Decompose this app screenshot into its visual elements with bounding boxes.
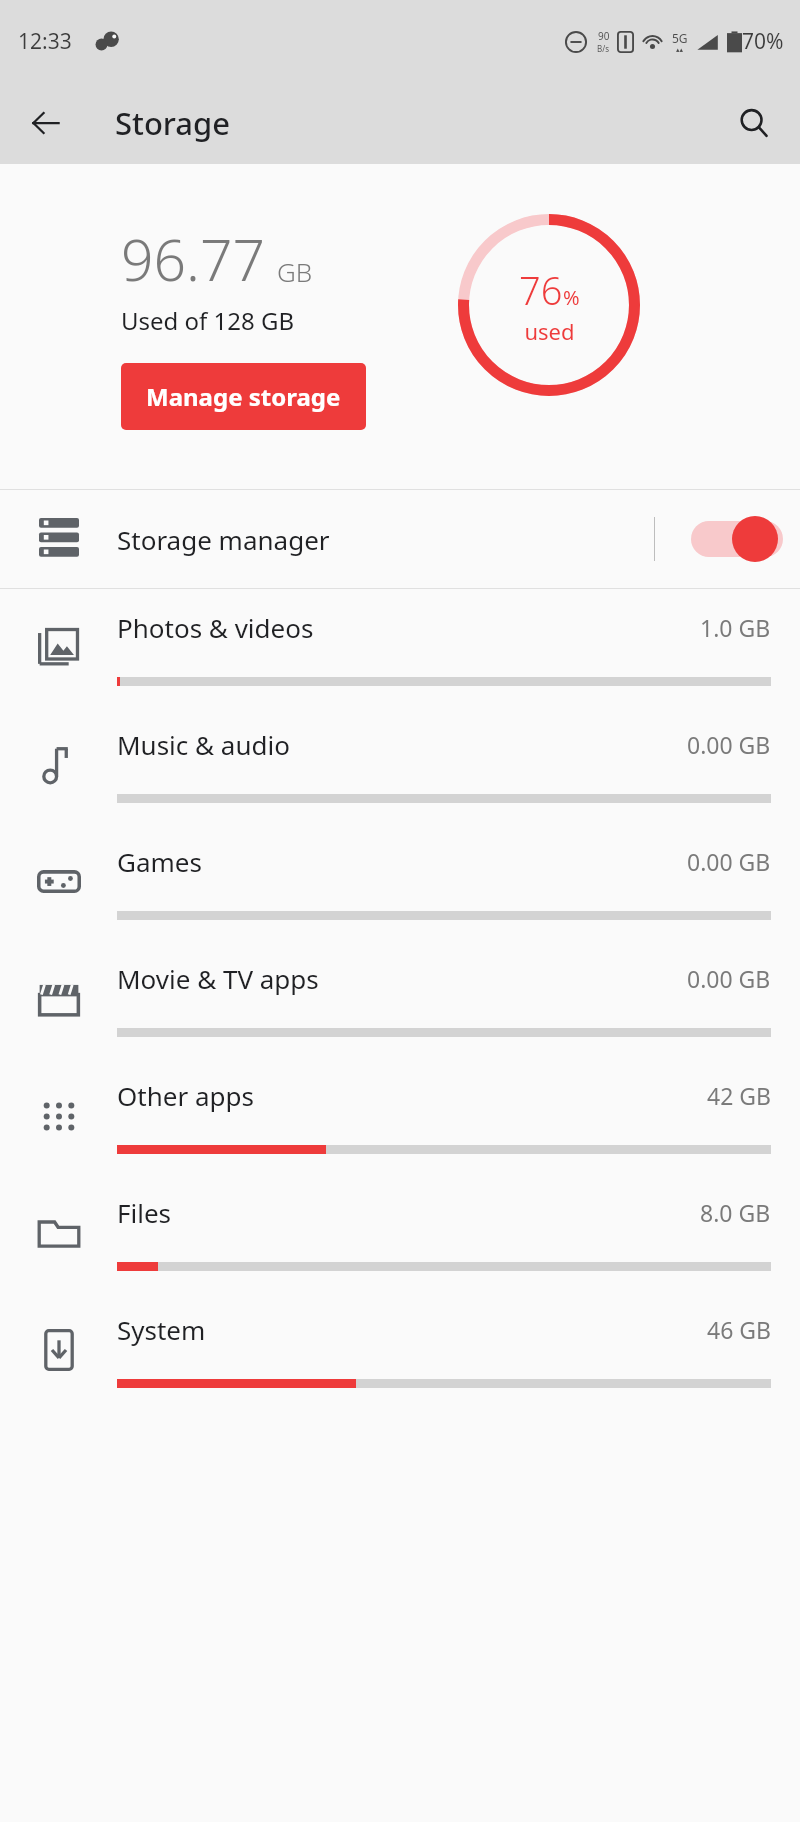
button[interactable]: Storage manager toggle — [655, 490, 800, 588]
staticText: 90 — [598, 29, 610, 43]
staticText: used — [524, 316, 575, 346]
staticText: ▴▴ — [676, 46, 684, 54]
staticText: Storage — [115, 102, 231, 144]
button[interactable]: Photos & videos — [0, 589, 800, 706]
staticText: Music & audio — [117, 727, 687, 762]
button[interactable]: Other apps — [0, 1057, 800, 1174]
staticText: 1.0 GB — [700, 612, 771, 643]
staticText: System — [117, 1312, 707, 1347]
staticText: Other apps — [117, 1078, 707, 1113]
staticText: % — [563, 284, 580, 311]
button[interactable]: Search — [728, 97, 780, 149]
button[interactable]: Manage storage — [121, 363, 366, 430]
staticText: Used of 128 GB — [121, 304, 295, 337]
staticText: Photos & videos — [117, 610, 700, 645]
button[interactable]: Movie & TV apps — [0, 940, 800, 1057]
staticText: 96.77 — [121, 220, 266, 298]
staticText: 5G — [672, 30, 688, 46]
staticText: Storage manager — [117, 522, 654, 557]
button[interactable]: Back — [20, 97, 72, 149]
staticText: 42 GB — [707, 1080, 771, 1111]
staticText: B/s — [597, 43, 610, 54]
staticText: 0.00 GB — [687, 729, 771, 760]
staticText: 0.00 GB — [687, 846, 771, 877]
button[interactable]: Storage manager — [0, 490, 800, 588]
button[interactable]: System — [0, 1291, 800, 1408]
button[interactable]: Files — [0, 1174, 800, 1291]
staticText: 12:33 — [18, 27, 72, 56]
staticText: 76 — [519, 264, 563, 316]
staticText: GB — [277, 254, 313, 289]
button[interactable]: Games — [0, 823, 800, 940]
staticText: 46 GB — [707, 1314, 771, 1345]
button[interactable]: Music & audio — [0, 706, 800, 823]
staticText: Movie & TV apps — [117, 961, 687, 996]
staticText: Files — [117, 1195, 700, 1230]
staticText: 70% — [742, 27, 784, 56]
staticText: Games — [117, 844, 687, 879]
staticText: 8.0 GB — [700, 1197, 771, 1228]
staticText: Manage storage — [146, 380, 341, 413]
staticText: 0.00 GB — [687, 963, 771, 994]
